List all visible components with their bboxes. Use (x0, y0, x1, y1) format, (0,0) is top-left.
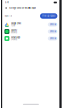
staticText: Free up space (42, 15, 55, 17)
staticText: Uninstall (50, 30, 56, 33)
staticText: Uninstall (50, 23, 56, 26)
button[interactable]: WhatsApp (2, 35, 59, 42)
button[interactable]: Google Drive (2, 21, 59, 28)
staticText: Google Drive (11, 22, 21, 25)
staticText: WhatsApp (11, 36, 20, 39)
staticText: 860 MB (11, 32, 17, 34)
staticText: Uninstall (50, 37, 56, 40)
staticText: 9:41 (5, 1, 9, 4)
button[interactable]: Free up space (40, 13, 57, 19)
staticText: Spotify (11, 29, 17, 32)
staticText: Storage used by installed apps (9, 7, 36, 9)
button[interactable]: Spotify (2, 28, 59, 35)
staticText: 540 MB (11, 39, 17, 41)
staticText: 1.2 GB (11, 25, 15, 27)
button[interactable]: Back (4, 6, 7, 9)
staticText: Apps (3) (4, 15, 12, 17)
